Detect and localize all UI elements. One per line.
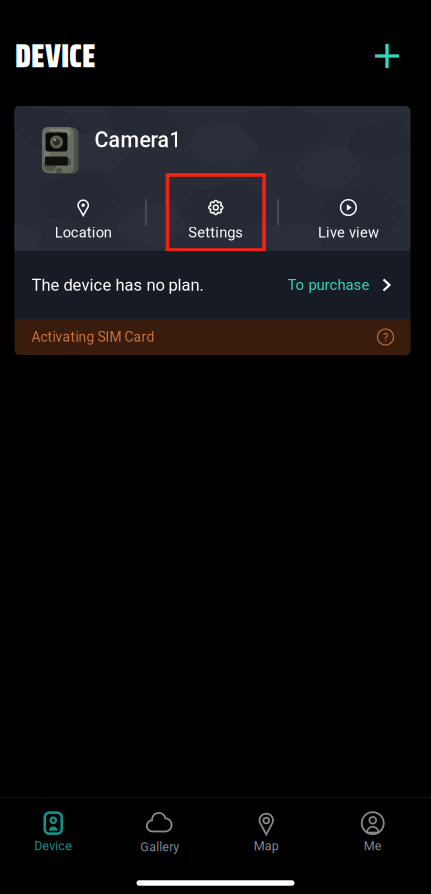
button[interactable]: Location bbox=[35, 175, 131, 250]
button[interactable]: Device bbox=[0, 798, 106, 860]
staticText: Map bbox=[254, 839, 279, 853]
staticText: Device bbox=[34, 839, 72, 853]
staticText: Location bbox=[55, 224, 112, 241]
staticText: Me bbox=[364, 839, 382, 853]
staticText: Gallery bbox=[140, 840, 179, 854]
staticText: Live view bbox=[318, 224, 379, 241]
staticText: The device has no plan. bbox=[31, 275, 203, 295]
button[interactable]: The device has no plan. bbox=[14, 251, 410, 319]
button[interactable]: Live view bbox=[300, 175, 397, 250]
button[interactable]: Add device bbox=[365, 34, 409, 78]
button[interactable]: Settings bbox=[167, 175, 264, 250]
button[interactable]: Activating SIM Card bbox=[14, 319, 410, 355]
button[interactable]: Me bbox=[319, 798, 426, 860]
staticText: ? bbox=[383, 330, 388, 344]
staticText: To purchase bbox=[287, 276, 369, 294]
staticText: Settings bbox=[188, 224, 243, 241]
button[interactable]: Map bbox=[213, 798, 319, 860]
staticText: Activating SIM Card bbox=[31, 329, 154, 345]
staticText: Camera1 bbox=[94, 127, 181, 152]
button[interactable]: Gallery bbox=[106, 798, 213, 860]
staticText: DEVICE bbox=[15, 31, 96, 81]
